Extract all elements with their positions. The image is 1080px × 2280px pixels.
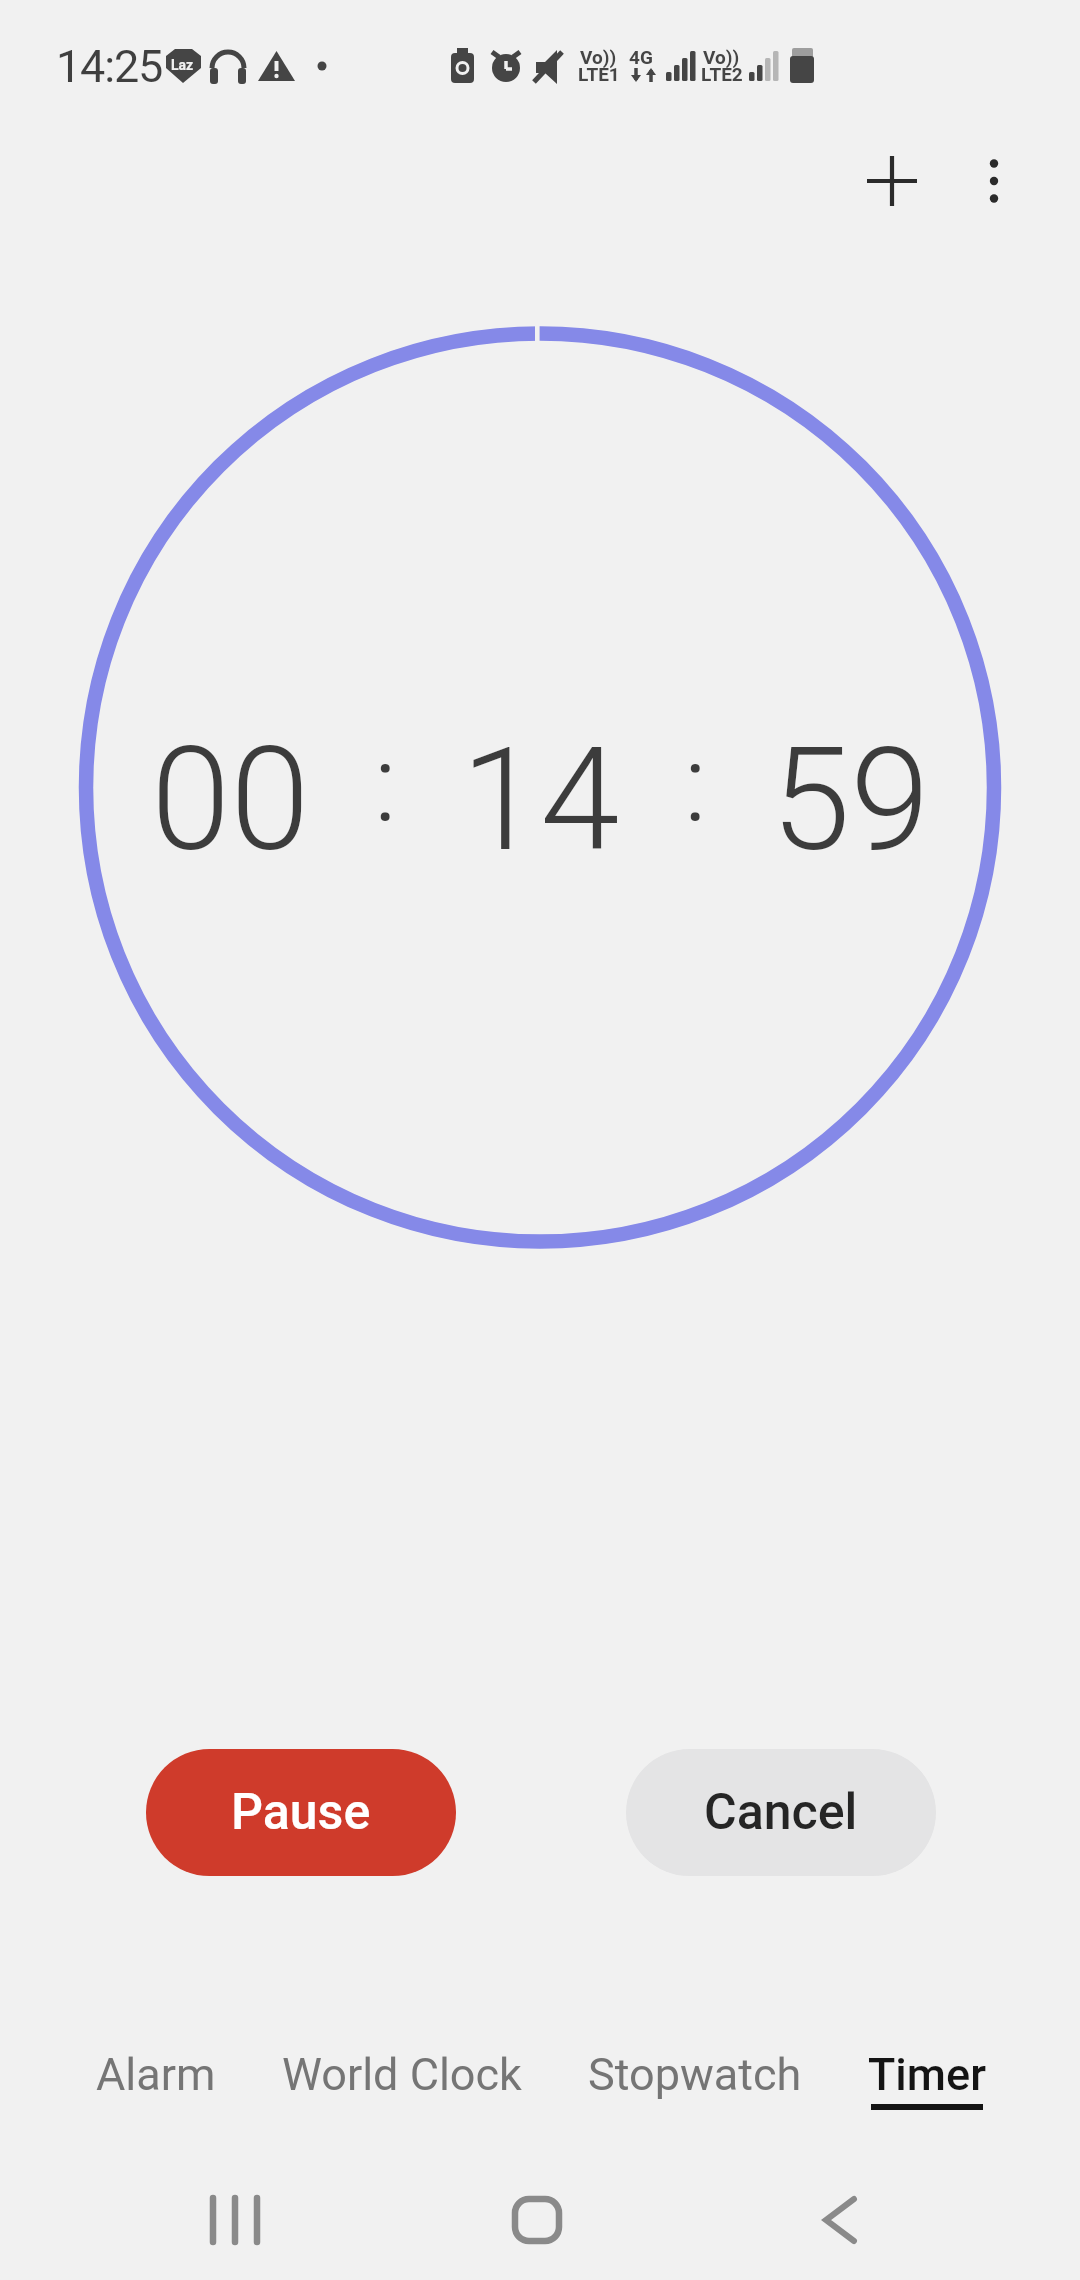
staticText: Cancel	[704, 1783, 858, 1842]
button[interactable]	[180, 2185, 290, 2255]
staticText: :	[374, 721, 397, 848]
button[interactable]	[964, 145, 1024, 217]
button[interactable]	[856, 145, 928, 217]
staticText: Vo))	[580, 46, 617, 68]
button[interactable]	[790, 2185, 890, 2255]
staticText: 4G	[629, 46, 653, 68]
button[interactable]: Cancel	[626, 1749, 936, 1876]
staticText: 00	[151, 716, 310, 884]
staticText: 14:25	[56, 40, 163, 93]
staticText: Pause	[231, 1783, 371, 1842]
staticText: 59	[771, 716, 930, 884]
staticText: Vo))	[703, 46, 740, 68]
staticText: :	[684, 721, 707, 848]
staticText: Alarm	[96, 2048, 216, 2101]
button[interactable]: Timer	[797, 2038, 1057, 2110]
staticText: Timer	[868, 2048, 986, 2101]
button[interactable]: Pause	[146, 1749, 456, 1876]
staticText: LTE2	[701, 63, 743, 85]
staticText: World Clock	[282, 2048, 522, 2101]
staticText: 14	[461, 716, 620, 884]
button[interactable]: Stopwatch	[565, 2038, 825, 2110]
staticText: LTE1	[578, 63, 620, 85]
staticText: Laz	[171, 57, 194, 73]
button[interactable]: World Clock	[272, 2038, 532, 2110]
button[interactable]	[477, 2185, 597, 2255]
staticText: Stopwatch	[588, 2048, 802, 2101]
button[interactable]: Alarm	[26, 2038, 286, 2110]
